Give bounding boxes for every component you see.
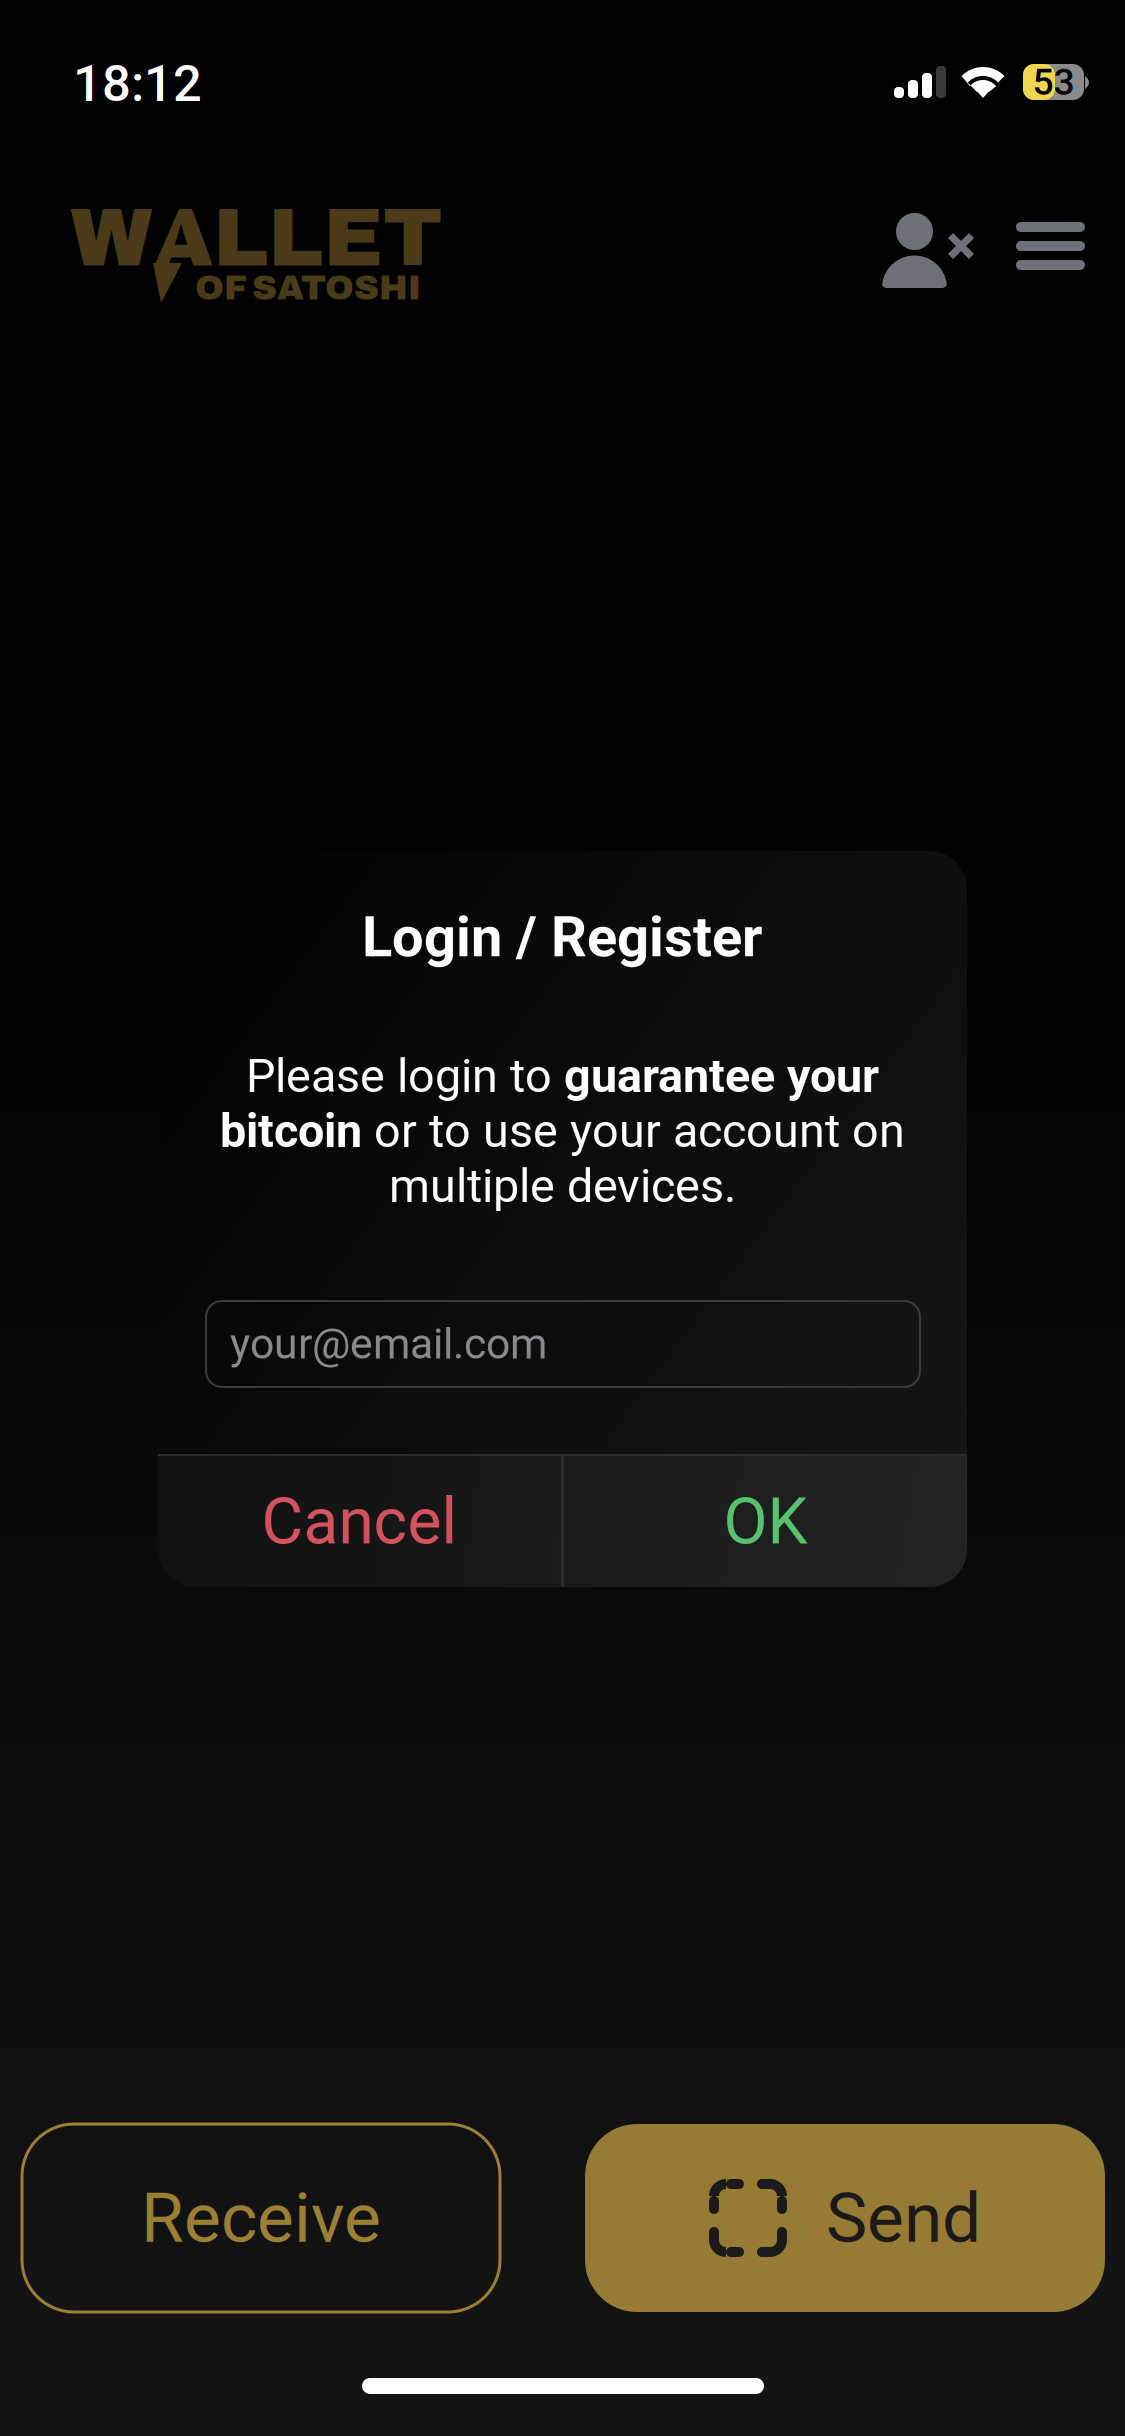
staticText: Please login to	[246, 1049, 564, 1103]
staticText: guarantee your	[564, 1049, 879, 1103]
staticText: bitcoin	[220, 1104, 362, 1158]
staticText: OK	[723, 1484, 807, 1559]
staticText: Login / Register	[362, 904, 763, 970]
staticText: your@email.com	[230, 1319, 547, 1369]
button[interactable]: Menu	[1016, 222, 1085, 270]
button[interactable]: OK	[564, 1456, 967, 1587]
button[interactable]: Sign out	[877, 213, 969, 288]
staticText: Cancel	[261, 1484, 457, 1559]
button[interactable]: Send	[585, 2124, 1105, 2312]
staticText: Receive	[141, 2177, 381, 2259]
button[interactable]: Cancel	[158, 1456, 561, 1587]
staticText: 53	[1032, 60, 1074, 104]
staticText: 18:12	[73, 54, 202, 113]
button[interactable]: Receive	[22, 2124, 500, 2312]
staticText: or to use your account on	[362, 1104, 905, 1158]
staticText: multiple devices.	[389, 1159, 736, 1213]
staticText: OF SATOSHI	[195, 269, 421, 307]
staticText: Send	[826, 2177, 981, 2259]
staticText: WALLET	[70, 193, 443, 283]
